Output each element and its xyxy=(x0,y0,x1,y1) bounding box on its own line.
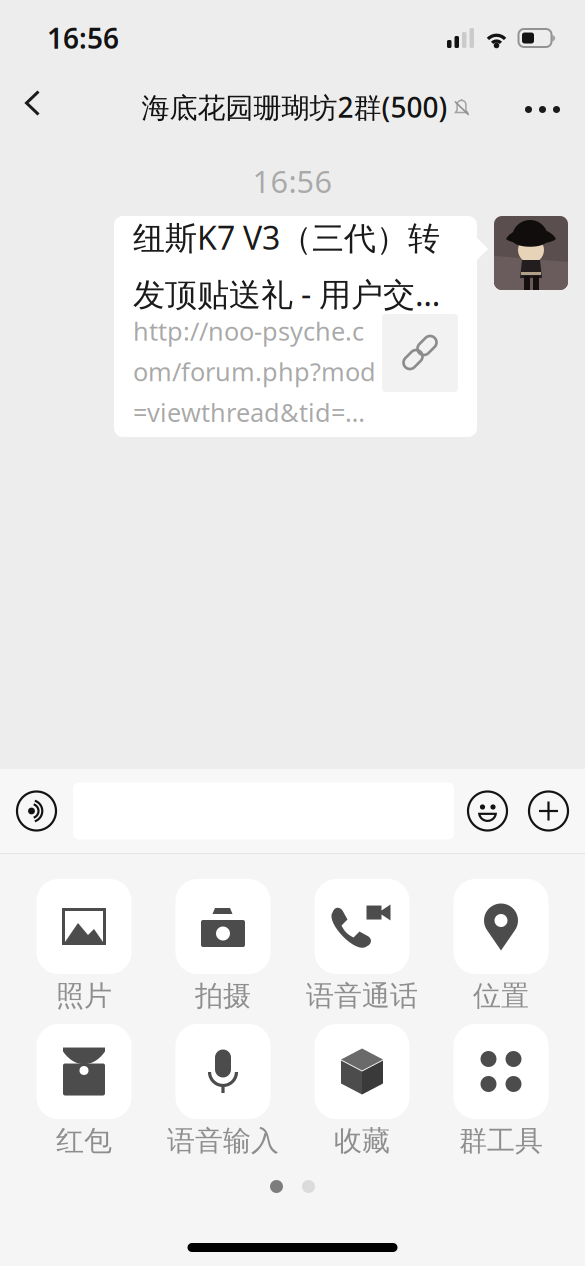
button[interactable]: 位置 xyxy=(431,879,570,1005)
staticText: 纽斯K7 V3（三代）转 xyxy=(133,216,440,258)
button[interactable]: 语音通话 xyxy=(292,879,431,1005)
staticText: 海底花园珊瑚坊2群(500) xyxy=(141,88,447,126)
staticText: om/forum.php?mod xyxy=(133,355,376,388)
button[interactable]: 红包 xyxy=(14,1024,153,1150)
button[interactable]: Profile photo xyxy=(494,216,568,290)
button[interactable]: More actions xyxy=(529,791,568,830)
button[interactable]: 纽斯K7 V3（三代）转 xyxy=(114,216,477,437)
staticText: 拍摄 xyxy=(195,979,251,1013)
staticText: 语音输入 xyxy=(167,1124,279,1158)
staticText: 发顶贴送礼 - 用户交… xyxy=(133,272,440,315)
staticText: http://noo-psyche.c xyxy=(133,314,364,348)
staticText: 16:56 xyxy=(47,19,119,57)
button[interactable]: Emoji xyxy=(468,791,507,830)
staticText: 位置 xyxy=(473,979,529,1013)
button[interactable]: More xyxy=(496,76,585,146)
button[interactable]: 拍摄 xyxy=(153,879,292,1005)
button[interactable]: Voice message xyxy=(17,791,56,830)
button[interactable]: Back xyxy=(0,76,74,146)
staticText: 群工具 xyxy=(459,1124,543,1158)
staticText: 照片 xyxy=(56,979,112,1013)
staticText: 红包 xyxy=(56,1124,112,1158)
staticText: 语音通话 xyxy=(306,979,418,1013)
button[interactable]: 收藏 xyxy=(292,1024,431,1150)
staticText: 收藏 xyxy=(334,1124,390,1158)
button[interactable]: 照片 xyxy=(14,879,153,1005)
staticText: 16:56 xyxy=(252,161,332,201)
button[interactable]: 群工具 xyxy=(431,1024,570,1150)
staticText: =viewthread&tid=… xyxy=(133,395,365,429)
button[interactable]: 语音输入 xyxy=(153,1024,292,1150)
